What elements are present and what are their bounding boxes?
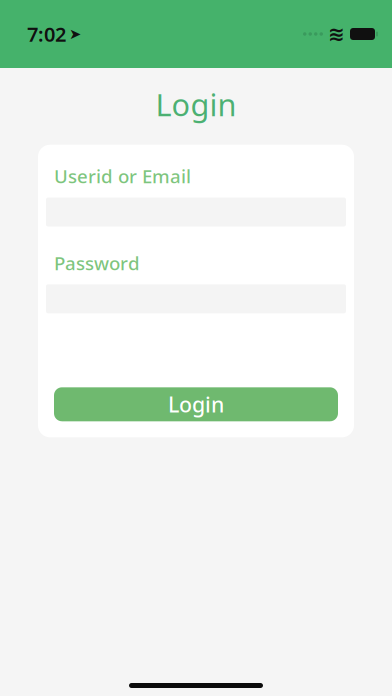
button[interactable]: Login	[54, 387, 338, 421]
staticText: Login	[168, 390, 224, 418]
staticText: ➤	[69, 26, 81, 42]
staticText: Login	[155, 84, 236, 125]
staticText: Userid or Email	[54, 164, 191, 188]
staticText: Password	[54, 250, 140, 275]
staticText: ≋	[328, 23, 345, 45]
staticText: 7:02	[27, 21, 66, 47]
